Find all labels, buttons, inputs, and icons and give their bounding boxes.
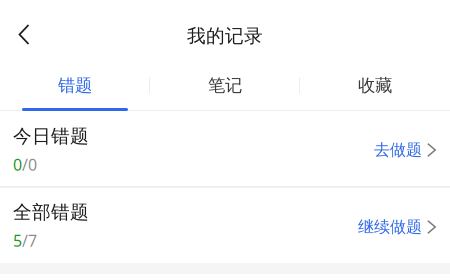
staticText: 我的记录 [187,24,263,47]
staticText: 全部错题 [13,201,89,224]
staticText: /0 [22,154,37,175]
staticText: 收藏 [358,75,392,96]
button[interactable]: 全部错题 [0,188,450,263]
staticText: 5 [13,230,22,251]
staticText: 笔记 [208,75,242,96]
button[interactable]: 错题 [0,58,150,111]
staticText: /7 [22,230,37,251]
button[interactable]: 收藏 [300,58,450,111]
staticText: 继续做题 [358,217,422,237]
staticText: 错题 [58,75,92,96]
staticText: 今日错题 [13,125,89,148]
button[interactable]: 返回 [1,11,47,57]
button[interactable]: 今日错题 [0,111,450,186]
staticText: 去做题 [374,140,422,160]
button[interactable]: 笔记 [150,58,300,111]
staticText: 0 [13,154,22,175]
